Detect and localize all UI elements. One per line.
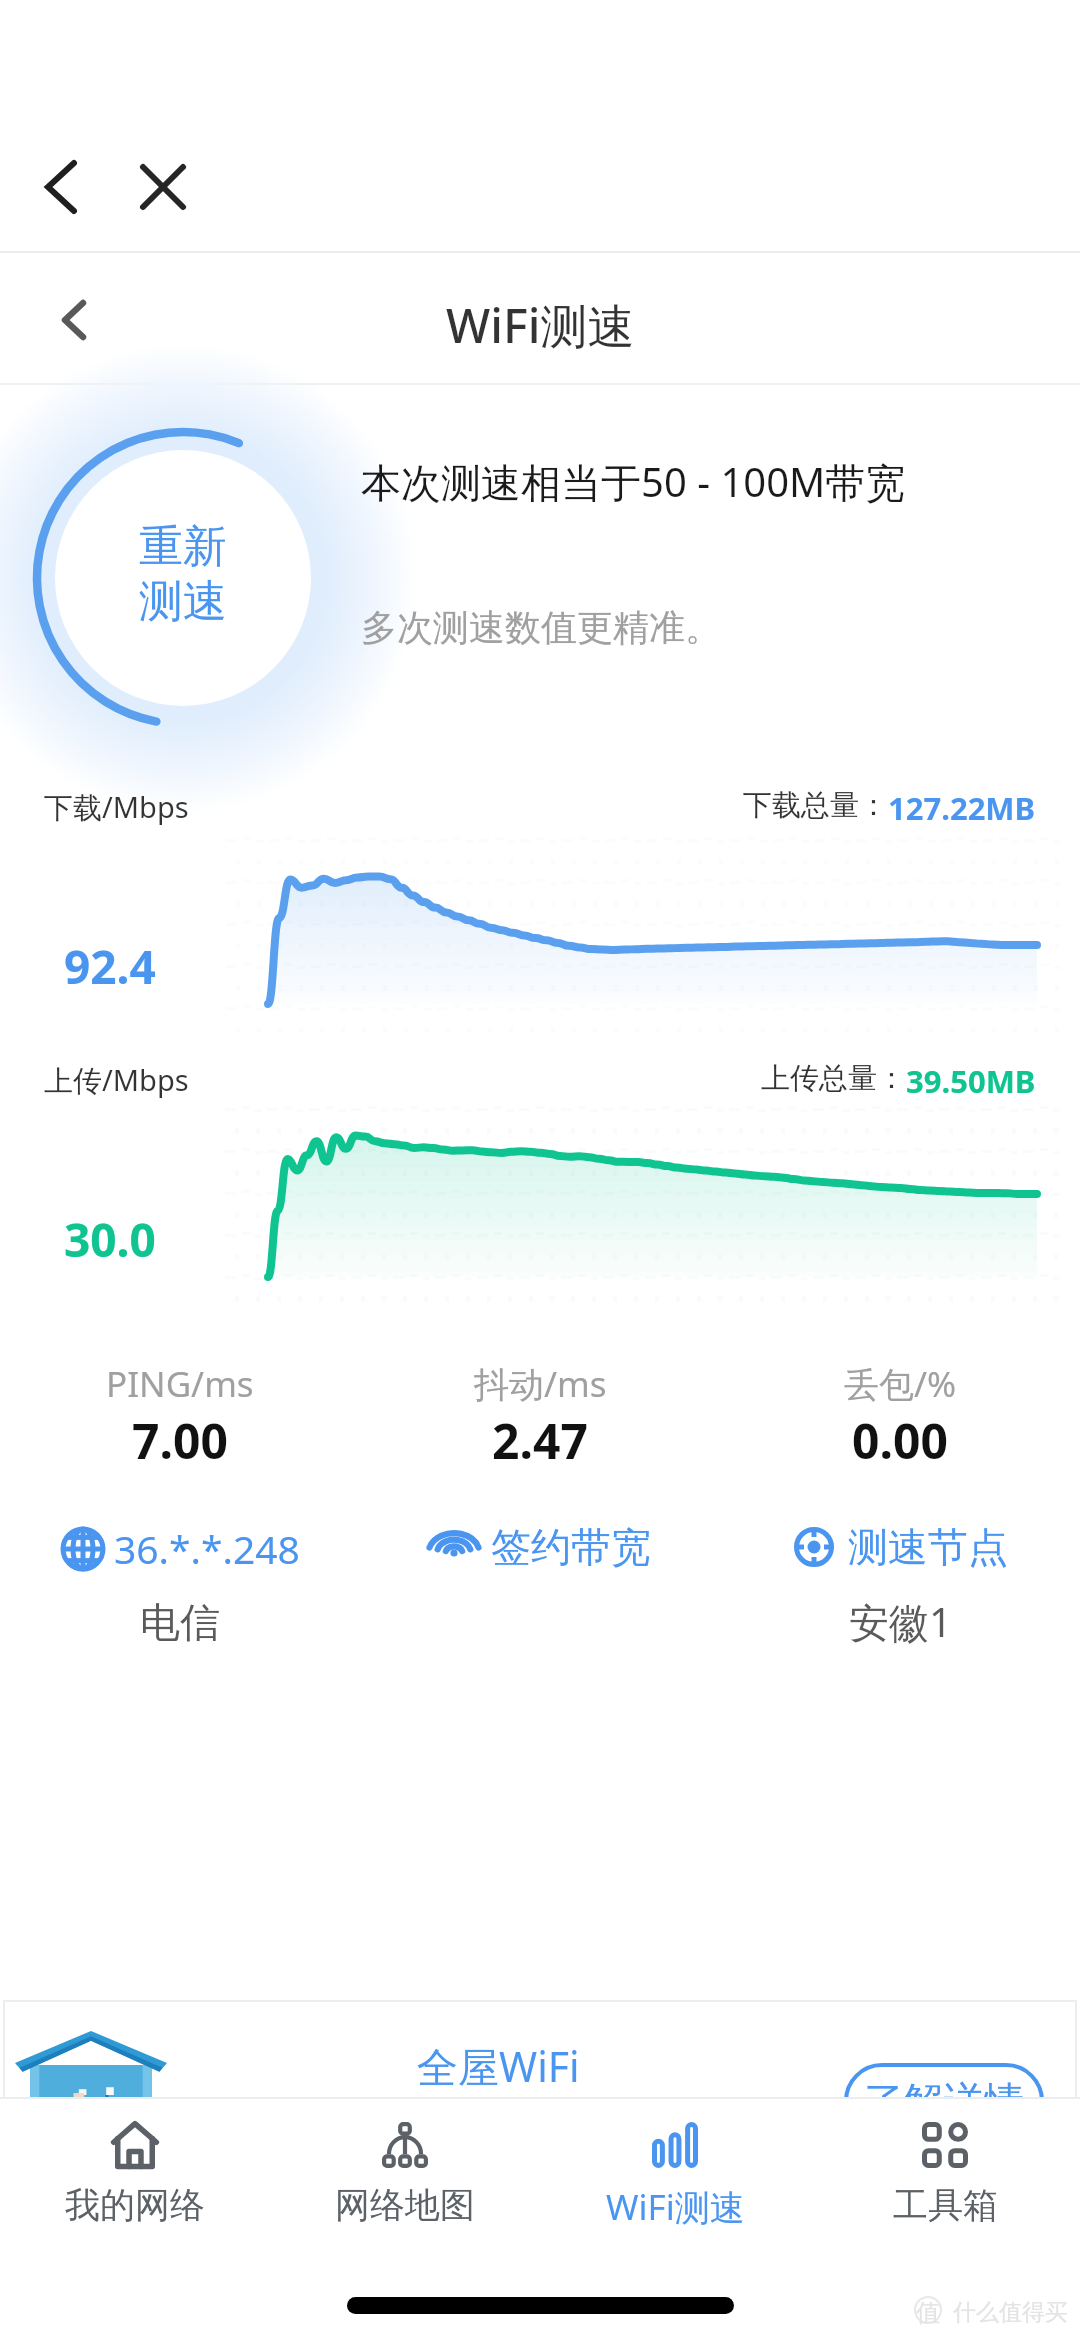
- staticText: 36.*.*.248: [114, 1522, 300, 1575]
- staticText: 127.22MB: [888, 787, 1036, 829]
- staticText: 我的网络: [65, 2183, 205, 2227]
- staticText: WiFi测速: [606, 2183, 745, 2231]
- staticText: 测速节点: [848, 1522, 1008, 1572]
- button[interactable]: 36.*.*.248: [61, 1522, 300, 1575]
- staticText: PING/ms: [106, 1360, 254, 1408]
- staticText: 0.00: [852, 1408, 948, 1473]
- staticText: 2.47: [492, 1408, 588, 1473]
- button[interactable]: Close: [121, 145, 205, 229]
- button[interactable]: Back: [19, 145, 103, 229]
- staticText: 多次测速数值更精准。: [361, 605, 721, 650]
- button[interactable]: 重新: [55, 446, 311, 702]
- staticText: 上传总量：: [761, 1060, 906, 1097]
- staticText: 7.00: [132, 1408, 228, 1473]
- staticText: 工具箱: [893, 2183, 998, 2227]
- staticText: 39.50MB: [906, 1060, 1036, 1102]
- staticText: 抖动/ms: [474, 1360, 607, 1408]
- staticText: 了解详情: [864, 2076, 1024, 2126]
- staticText: 92.4: [64, 935, 156, 998]
- staticText: 下载/Mbps: [44, 787, 189, 827]
- button[interactable]: 签约带宽: [429, 1522, 651, 1572]
- button[interactable]: 全屋WiFi: [3, 2000, 1077, 2097]
- button[interactable]: 测速节点: [792, 1522, 1008, 1572]
- staticText: WiFi测速: [446, 293, 635, 357]
- staticText: 电信: [140, 1597, 220, 1647]
- staticText: 什么值得买: [953, 2298, 1068, 2327]
- staticText: 值: [916, 2298, 940, 2328]
- staticText: 签约带宽: [491, 1522, 651, 1572]
- staticText: 测速: [139, 574, 227, 629]
- staticText: 网络地图: [335, 2183, 475, 2227]
- button[interactable]: 我的网络: [0, 2097, 270, 2250]
- staticText: 本次测速相当于50 - 100M带宽: [361, 454, 906, 509]
- staticText: 安徽1: [849, 1594, 952, 1649]
- button[interactable]: 网络地图: [270, 2097, 540, 2250]
- staticText: 丢包/%: [844, 1360, 957, 1408]
- button[interactable]: Navigate up: [30, 274, 122, 366]
- button[interactable]: 工具箱: [810, 2097, 1080, 2250]
- staticText: 下载总量：: [743, 787, 888, 824]
- staticText: 上传/Mbps: [44, 1060, 189, 1100]
- staticText: 30.0: [64, 1208, 156, 1271]
- staticText: 重新: [139, 519, 227, 574]
- button[interactable]: WiFi测速: [540, 2097, 810, 2250]
- staticText: 全屋WiFi: [417, 2038, 580, 2094]
